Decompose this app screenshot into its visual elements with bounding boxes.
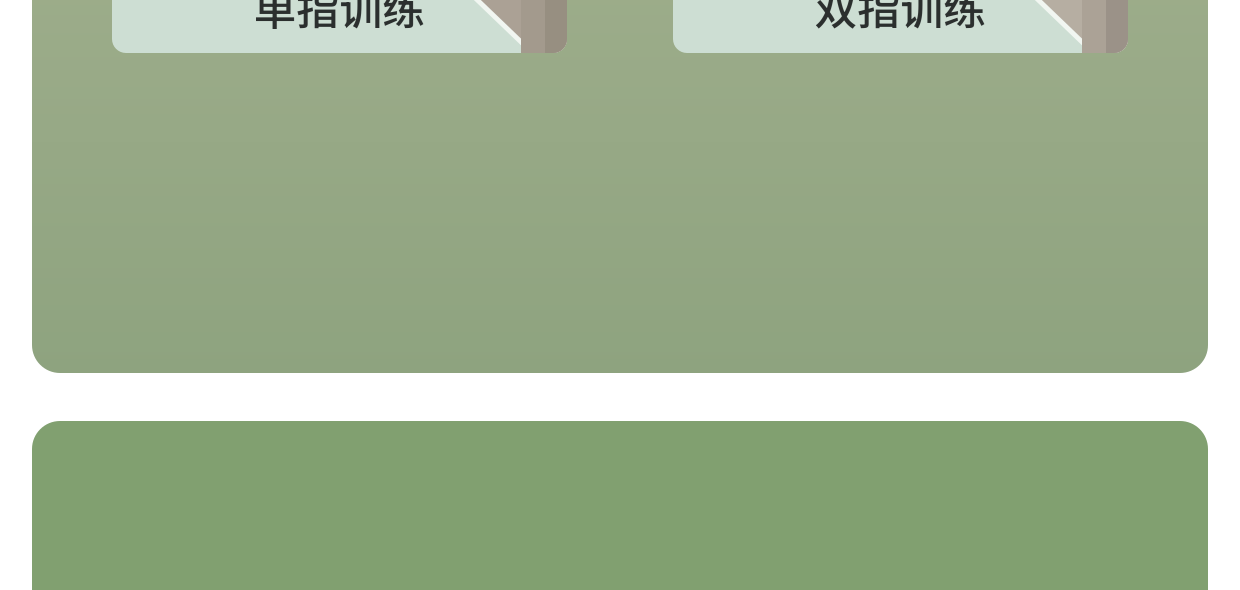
staticText: 单指训练 — [253, 0, 425, 37]
button[interactable]: 单指训练 — [112, 0, 567, 53]
staticText: 双指训练 — [814, 0, 986, 37]
button[interactable]: 双指训练 — [673, 0, 1128, 53]
